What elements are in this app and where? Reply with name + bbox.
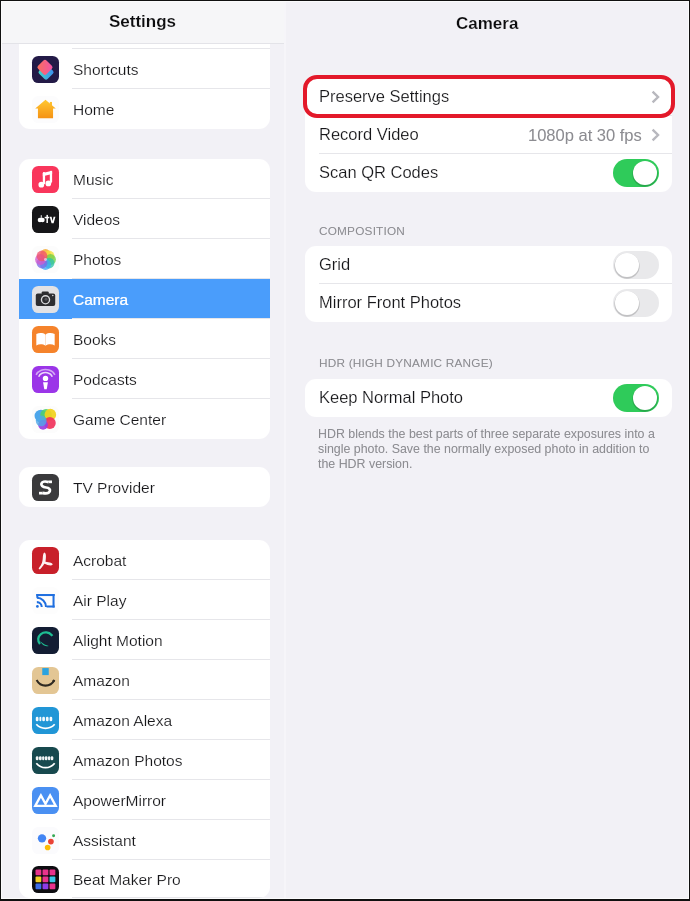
button[interactable]: Preserve Settings: [305, 78, 672, 116]
staticText: Camera: [456, 14, 519, 33]
button[interactable]: Amazon Photos: [19, 740, 270, 780]
button[interactable]: Shortcuts: [19, 49, 270, 89]
staticText: Wallet: [73, 21, 116, 38]
staticText: Shortcuts: [73, 61, 139, 78]
staticText: Keep Normal Photo: [319, 388, 463, 406]
staticText: Air Play: [73, 592, 127, 609]
staticText: Alight Motion: [73, 632, 163, 649]
button[interactable]: Alight Motion: [19, 620, 270, 660]
staticText: ApowerMirror: [73, 792, 167, 809]
staticText: Amazon: [73, 672, 130, 689]
staticText: Game Center: [73, 411, 167, 428]
button[interactable]: Grid: [305, 246, 672, 284]
staticText: Scan QR Codes: [319, 163, 439, 181]
staticText: Record Video: [319, 125, 419, 143]
button[interactable]: Scan QR Codes: [305, 154, 672, 192]
button[interactable]: Photos: [19, 239, 270, 279]
button[interactable]: Toggle on: [613, 384, 659, 412]
staticText: Music: [73, 171, 114, 188]
staticText: Grid: [319, 255, 351, 273]
button[interactable]: Acrobat: [19, 540, 270, 580]
button[interactable]: Assistant: [19, 820, 270, 860]
button[interactable]: Podcasts: [19, 359, 270, 399]
other: More: [651, 128, 659, 142]
staticText: Books: [73, 331, 117, 348]
button[interactable]: Keep Normal Photo: [305, 379, 672, 417]
staticText: Amazon Alexa: [73, 712, 173, 729]
other: More: [651, 90, 659, 104]
button[interactable]: Amazon Alexa: [19, 700, 270, 740]
button[interactable]: Amazon: [19, 660, 270, 700]
button[interactable]: Beat Maker Pro: [19, 860, 270, 898]
staticText: Settings: [109, 12, 177, 31]
staticText: TV Provider: [73, 479, 155, 496]
button[interactable]: Air Play: [19, 580, 270, 620]
button[interactable]: Music: [19, 159, 270, 199]
button[interactable]: ApowerMirror: [19, 780, 270, 820]
staticText: HDR blends the best parts of three separ…: [318, 427, 655, 471]
staticText: Acrobat: [73, 552, 127, 569]
button[interactable]: Record Video: [305, 116, 672, 154]
staticText: Photos: [73, 251, 122, 268]
button[interactable]: Videos: [19, 199, 270, 239]
staticText: 1080p at 30 fps: [528, 126, 642, 144]
button[interactable]: Wallet: [19, 9, 270, 49]
button[interactable]: Game Center: [19, 399, 270, 439]
button[interactable]: Camera: [19, 279, 270, 319]
button[interactable]: TV Provider: [19, 467, 270, 507]
button[interactable]: Mirror Front Photos: [305, 284, 672, 322]
staticText: Home: [73, 101, 115, 118]
staticText: Assistant: [73, 832, 136, 849]
staticText: Videos: [73, 211, 121, 228]
staticText: Mirror Front Photos: [319, 293, 462, 311]
staticText: Amazon Photos: [73, 752, 183, 769]
staticText: Beat Maker Pro: [73, 871, 181, 888]
button[interactable]: Toggle off: [613, 251, 659, 279]
staticText: COMPOSITION: [319, 224, 406, 237]
staticText: Preserve Settings: [319, 87, 450, 105]
button[interactable]: Toggle off: [613, 289, 659, 317]
staticText: HDR (HIGH DYNAMIC RANGE): [319, 356, 493, 369]
button[interactable]: Toggle on: [613, 159, 659, 187]
button[interactable]: Home: [19, 89, 270, 129]
staticText: Podcasts: [73, 371, 137, 388]
staticText: Camera: [73, 291, 129, 308]
button[interactable]: Books: [19, 319, 270, 359]
